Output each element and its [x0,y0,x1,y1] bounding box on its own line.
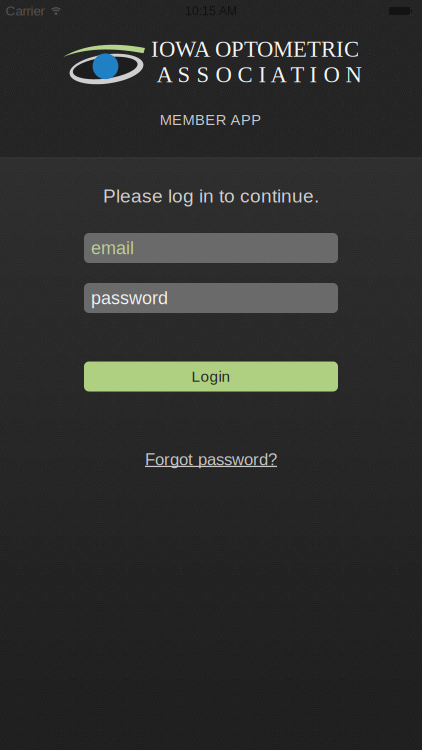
button[interactable]: email [84,233,338,263]
staticText: A S S O C I A T I O N [156,62,361,87]
button[interactable]: password [84,283,338,313]
staticText: Carrier [5,4,44,18]
staticText: IOWA OPTOMETRIC [151,36,359,61]
staticText: Please log in to continue. [103,185,319,207]
staticText: Forgot password? [145,450,277,469]
staticText: email [91,238,134,258]
button[interactable]: Login [84,361,338,391]
button[interactable]: Forgot password? [145,450,277,469]
staticText: 10:15 AM [185,4,237,18]
staticText: MEMBER APP [160,112,261,128]
staticText: password [91,288,168,308]
staticText: Login [191,368,230,385]
